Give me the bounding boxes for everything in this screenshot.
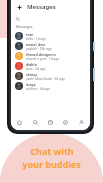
staticText: Messages xyxy=(16,24,33,29)
staticText: yeahhh · 10h ago xyxy=(26,47,52,51)
button[interactable]: Search xyxy=(29,116,42,129)
staticText: nexial_devi xyxy=(26,42,46,47)
staticText: your buddies xyxy=(22,158,81,170)
staticText: ok then · 4d ago xyxy=(26,87,51,91)
button[interactable]: Activity xyxy=(59,116,72,129)
button[interactable]: Home xyxy=(13,116,26,129)
staticText: sure · 2d ago xyxy=(26,67,46,71)
staticText: diablo xyxy=(26,62,37,67)
staticText: hello · 1h ago xyxy=(26,37,47,41)
button[interactable]: skinsy xyxy=(11,71,90,81)
staticText: shared a post · 1d ago xyxy=(26,57,60,61)
staticText: maya xyxy=(26,82,36,87)
button[interactable]: Search xyxy=(16,15,85,22)
button[interactable]: Profile xyxy=(75,116,88,129)
staticText: toni xyxy=(26,32,33,37)
button[interactable]: nexial_devi xyxy=(11,41,90,51)
button[interactable]: Reels xyxy=(44,116,57,129)
staticText: thread.designers xyxy=(26,52,56,57)
button[interactable]: thread.designers xyxy=(11,51,90,61)
button[interactable]: maya xyxy=(11,81,90,91)
button[interactable]: toni xyxy=(11,31,90,41)
button[interactable]: diablo xyxy=(11,61,90,71)
button[interactable]: New message xyxy=(15,3,23,11)
staticText: skinsy xyxy=(26,72,37,77)
staticText: yeah! albert.buds · 3d ago xyxy=(26,77,65,81)
staticText: Chat with xyxy=(30,145,74,157)
staticText: Messages xyxy=(27,3,56,11)
